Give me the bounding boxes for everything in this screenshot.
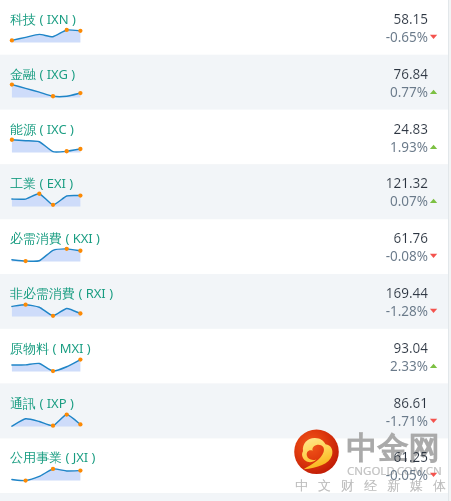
staticText: 必需消費 ( KXI ) xyxy=(10,229,101,247)
staticText: -0.05% xyxy=(306,466,428,484)
button[interactable]: 公用事業 ( JXI ) xyxy=(0,438,448,493)
staticText: 93.04 xyxy=(306,339,428,357)
staticText: 1.93% xyxy=(306,138,428,156)
staticText: 能源 ( IXC ) xyxy=(10,120,74,138)
staticText: 61.25 xyxy=(306,448,428,466)
staticText: 2.33% xyxy=(306,357,428,375)
staticText: 0.77% xyxy=(306,83,428,101)
staticText: -1.28% xyxy=(306,302,428,320)
staticText: 76.84 xyxy=(306,65,428,83)
staticText: 中 xyxy=(295,477,308,493)
button[interactable]: 通訊 ( IXP ) xyxy=(0,384,448,439)
staticText: 非必需消費 ( RXI ) xyxy=(10,284,114,302)
staticText: CNGOLD.COM.CN xyxy=(347,463,442,479)
staticText: 经 xyxy=(364,477,377,493)
button[interactable]: 金融 ( IXG ) xyxy=(0,55,448,110)
staticText: -1.71% xyxy=(306,412,428,430)
staticText: 24.83 xyxy=(306,120,428,138)
button[interactable]: 工業 ( EXI ) xyxy=(0,164,448,219)
staticText: 86.61 xyxy=(306,394,428,412)
staticText: 财 xyxy=(341,477,354,493)
button[interactable]: 非必需消費 ( RXI ) xyxy=(0,274,448,329)
button[interactable]: 科技 ( IXN ) xyxy=(0,0,448,55)
staticText: 体 xyxy=(433,477,446,493)
button[interactable]: 原物料 ( MXI ) xyxy=(0,329,448,384)
staticText: 文 xyxy=(318,477,331,493)
staticText: 原物料 ( MXI ) xyxy=(10,339,91,357)
staticText: 科技 ( IXN ) xyxy=(10,10,76,28)
staticText: 中金网 xyxy=(346,429,439,468)
staticText: -0.65% xyxy=(306,28,428,46)
button[interactable]: 能源 ( IXC ) xyxy=(0,110,448,165)
staticText: 169.44 xyxy=(306,284,428,302)
staticText: 0.07% xyxy=(306,192,428,210)
staticText: 58.15 xyxy=(306,10,428,28)
staticText: 通訊 ( IXP ) xyxy=(10,394,74,412)
staticText: 媒 xyxy=(410,477,423,493)
staticText: 公用事業 ( JXI ) xyxy=(10,448,96,466)
staticText: 121.32 xyxy=(306,174,428,192)
staticText: -0.08% xyxy=(306,247,428,265)
staticText: 金融 ( IXG ) xyxy=(10,65,76,83)
staticText: 工業 ( EXI ) xyxy=(10,174,74,192)
staticText: 新 xyxy=(387,477,400,493)
button[interactable]: 必需消費 ( KXI ) xyxy=(0,219,448,274)
staticText: 61.76 xyxy=(306,229,428,247)
